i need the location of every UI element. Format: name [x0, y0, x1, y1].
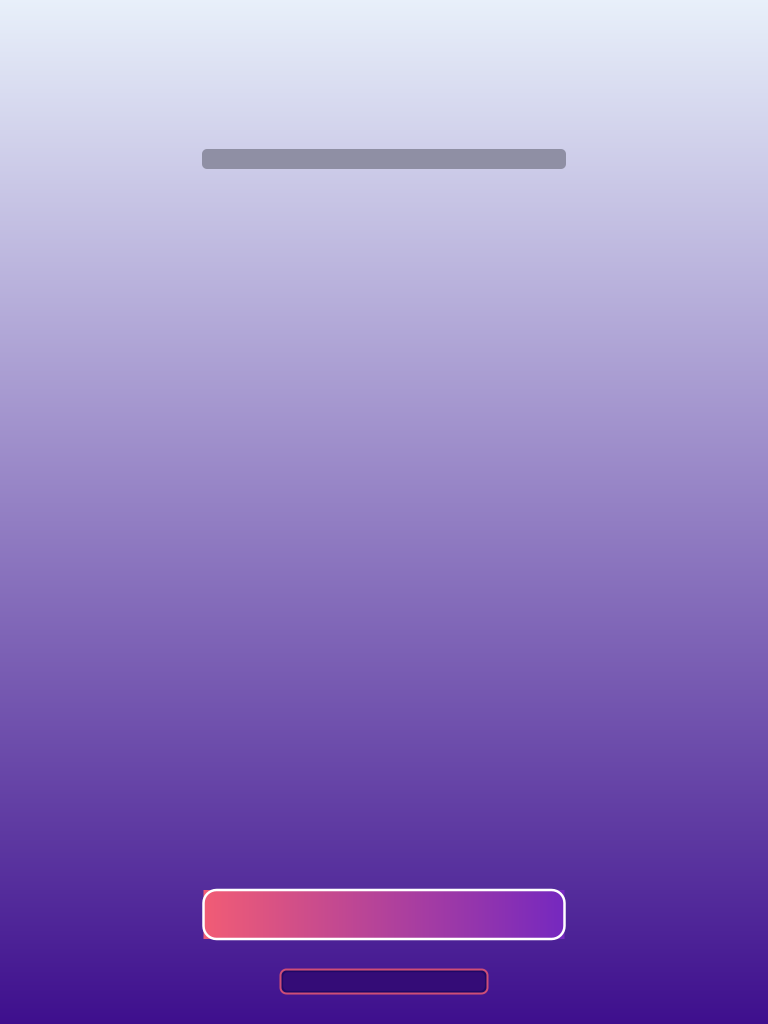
button[interactable]: Restore purchase — [280, 969, 487, 993]
button[interactable]: Continue — [203, 890, 564, 939]
